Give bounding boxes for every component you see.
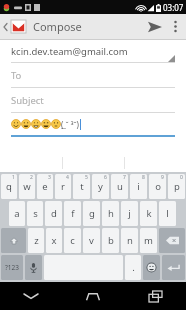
button[interactable]: b xyxy=(102,228,119,253)
staticText: k xyxy=(146,207,152,220)
button[interactable]: Symbols xyxy=(1,255,23,280)
staticText: i xyxy=(137,180,140,193)
button[interactable]: Subject xyxy=(11,88,175,113)
button[interactable]: o xyxy=(149,174,166,199)
staticText: l xyxy=(166,207,169,220)
staticText: ?123 xyxy=(5,263,19,272)
button[interactable]: t xyxy=(73,174,90,199)
button[interactable]: e xyxy=(37,174,53,199)
button[interactable]: Recent apps xyxy=(124,282,186,310)
button[interactable]: To xyxy=(11,63,175,88)
staticText: u xyxy=(117,180,123,193)
staticText: 4 xyxy=(66,174,69,181)
staticText: t xyxy=(80,180,84,193)
button[interactable]: Delete xyxy=(159,228,185,253)
button[interactable]: f xyxy=(64,201,81,226)
staticText: v xyxy=(89,234,94,247)
staticText: 03:07 xyxy=(163,2,184,13)
staticText: 8 xyxy=(142,174,145,181)
button[interactable]: z xyxy=(28,228,44,253)
button[interactable]: (͟ ˘ ³˘) xyxy=(11,113,175,137)
button[interactable]: l xyxy=(159,201,176,226)
button[interactable]: s xyxy=(27,201,43,226)
staticText: r xyxy=(61,180,65,193)
button[interactable]: i xyxy=(130,174,147,199)
staticText: (͟ ˘ ³˘) xyxy=(61,119,80,130)
staticText: 5 xyxy=(85,174,88,181)
staticText: c xyxy=(70,234,75,247)
button[interactable]: a xyxy=(9,201,25,226)
button[interactable]: Send xyxy=(143,14,167,39)
button[interactable]: c xyxy=(64,228,81,253)
button[interactable]: q xyxy=(1,174,17,199)
button[interactable]: kcin.dev.team@gmail.com xyxy=(11,40,175,63)
button[interactable]: Hide keyboard xyxy=(0,282,62,310)
button[interactable]: More options xyxy=(167,14,183,39)
staticText: s xyxy=(33,207,38,220)
staticText: 1 xyxy=(12,174,15,181)
staticText: kcin.dev.team@gmail.com xyxy=(11,45,128,58)
staticText: d xyxy=(51,207,57,220)
button[interactable]: r xyxy=(55,174,71,199)
staticText: 3 xyxy=(48,174,51,181)
staticText: f xyxy=(71,207,75,220)
button[interactable]: m xyxy=(140,228,157,253)
button[interactable]: h xyxy=(102,201,119,226)
button[interactable]: Emoji xyxy=(143,255,160,280)
button[interactable]: x xyxy=(46,228,62,253)
staticText: m xyxy=(144,234,153,247)
staticText: To xyxy=(11,69,22,82)
staticText: 2 xyxy=(30,174,33,181)
button[interactable]: . xyxy=(125,255,141,280)
button[interactable]: Voice input xyxy=(25,255,42,280)
staticText: w xyxy=(23,180,31,193)
button[interactable]: v xyxy=(83,228,100,253)
button[interactable]: u xyxy=(111,174,128,199)
staticText: 9 xyxy=(161,174,164,181)
staticText: n xyxy=(127,234,133,247)
button[interactable]: g xyxy=(83,201,100,226)
staticText: a xyxy=(14,207,20,220)
button[interactable]: Enter xyxy=(162,255,185,280)
staticText: y xyxy=(98,180,103,193)
button[interactable]: d xyxy=(45,201,62,226)
staticText: h xyxy=(108,207,114,220)
staticText: x xyxy=(51,234,57,247)
button[interactable]: p xyxy=(168,174,185,199)
staticText: 0 xyxy=(180,174,183,181)
staticText: b xyxy=(108,234,114,247)
staticText: z xyxy=(34,234,39,247)
staticText: 6 xyxy=(104,174,107,181)
staticText: g xyxy=(89,207,95,220)
button[interactable]: Navigate up xyxy=(2,20,27,33)
button[interactable]: Shift xyxy=(1,228,26,253)
staticText: o xyxy=(155,180,161,193)
staticText: . xyxy=(132,261,135,274)
staticText: j xyxy=(128,207,131,220)
staticText: 7 xyxy=(123,174,126,181)
staticText: Compose xyxy=(33,19,82,34)
button[interactable]: k xyxy=(140,201,157,226)
button[interactable]: n xyxy=(121,228,138,253)
button[interactable]: y xyxy=(92,174,109,199)
staticText: Subject xyxy=(11,94,44,107)
button[interactable]: w xyxy=(19,174,35,199)
staticText: q xyxy=(6,180,12,193)
button[interactable]: Home xyxy=(62,282,124,310)
staticText: e xyxy=(42,180,48,193)
button[interactable]: j xyxy=(121,201,138,226)
staticText: p xyxy=(174,180,180,193)
